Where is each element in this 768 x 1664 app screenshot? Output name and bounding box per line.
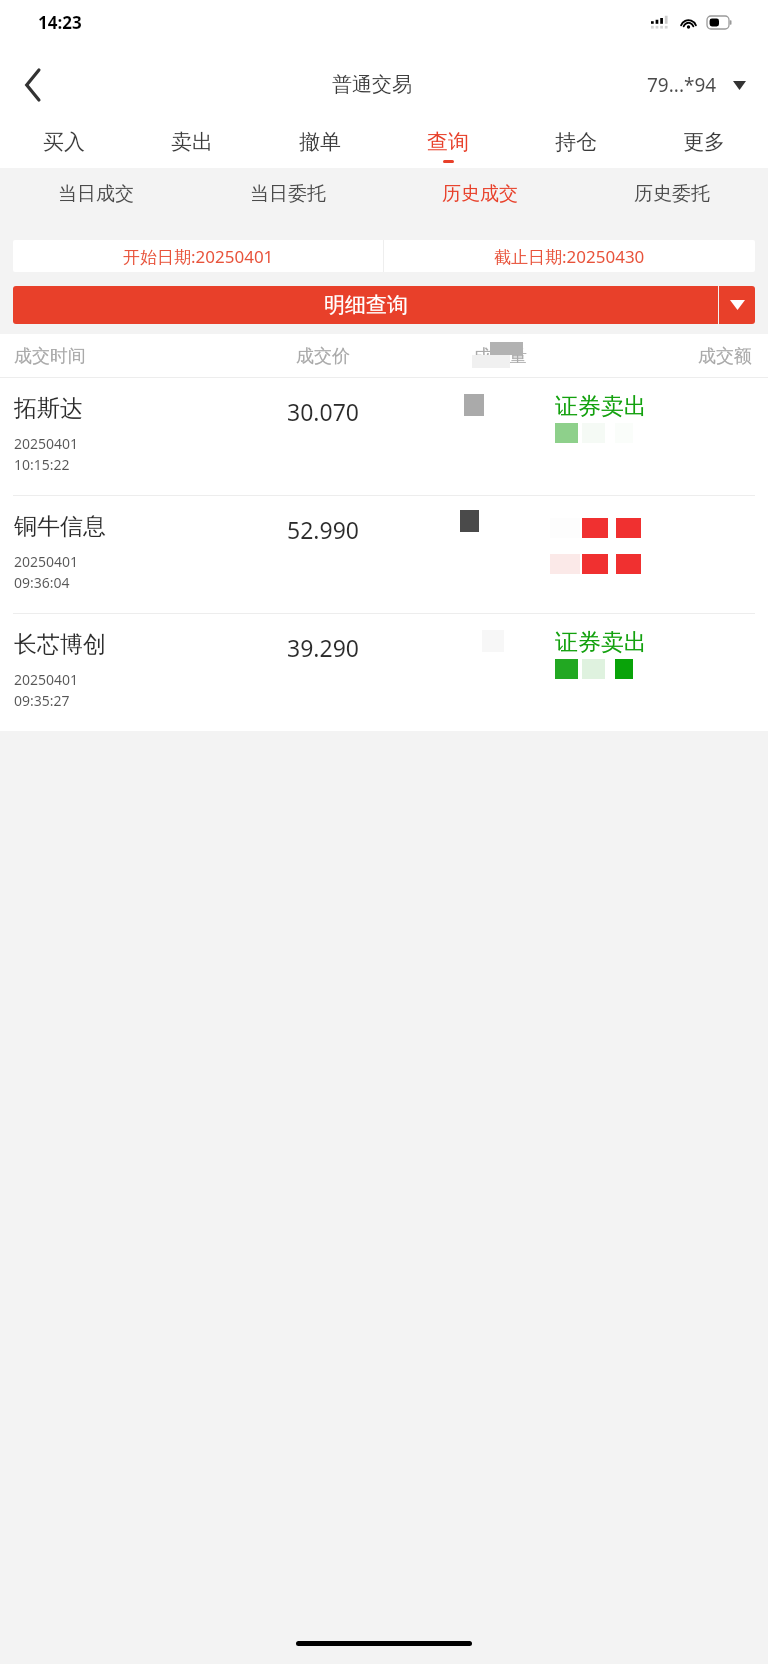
staticText: 买入	[43, 129, 85, 155]
button[interactable]: 当日成交	[0, 168, 192, 220]
staticText: 09:36:04	[14, 573, 70, 592]
staticText: 证券卖出	[555, 628, 647, 657]
button[interactable]: 明细查询	[13, 286, 718, 324]
staticText: 成交价	[296, 345, 350, 368]
staticText: 当日成交	[58, 182, 134, 206]
staticText: 成交量	[473, 345, 527, 368]
staticText: 持仓	[555, 129, 597, 155]
staticText: 长芯博创	[14, 630, 106, 659]
staticText: 铜牛信息	[14, 512, 106, 541]
button[interactable]: 开始日期:20250401	[13, 240, 383, 272]
staticText: 撤单	[299, 129, 341, 155]
button[interactable]: 铜牛信息	[0, 496, 768, 613]
staticText: 历史成交	[442, 182, 518, 206]
staticText: 更多	[683, 129, 725, 155]
staticText: 拓斯达	[14, 394, 83, 423]
staticText: 成交额	[698, 345, 752, 368]
button[interactable]: 截止日期:20250430	[384, 240, 755, 272]
staticText: 10:15:22	[14, 455, 70, 474]
button[interactable]: 79...*94	[647, 72, 746, 98]
staticText: 当日委托	[250, 182, 326, 206]
button[interactable]: 拓斯达	[0, 378, 768, 495]
button[interactable]: 买入	[0, 124, 128, 168]
staticText: 截止日期:20250430	[494, 245, 645, 268]
staticText: 39.290	[287, 632, 359, 663]
staticText: 普通交易	[332, 72, 412, 97]
staticText: 79...*94	[647, 72, 717, 98]
staticText: 30.070	[287, 396, 359, 427]
button[interactable]: More options	[719, 286, 755, 324]
button[interactable]: 查询	[384, 124, 512, 168]
button[interactable]: 撤单	[256, 124, 384, 168]
staticText: 卖出	[171, 129, 213, 155]
staticText: 开始日期:20250401	[123, 245, 274, 268]
button[interactable]: 卖出	[128, 124, 256, 168]
staticText: 20250401	[14, 670, 79, 689]
button[interactable]: 持仓	[512, 124, 640, 168]
staticText: 历史委托	[634, 182, 710, 206]
button[interactable]: 历史委托	[576, 168, 768, 220]
button[interactable]: 更多	[640, 124, 768, 168]
button[interactable]: Back	[0, 52, 66, 118]
staticText: 52.990	[287, 514, 359, 545]
staticText: 证券卖出	[555, 392, 647, 421]
staticText: 09:35:27	[14, 691, 70, 710]
staticText: 明细查询	[324, 292, 408, 318]
button[interactable]: 历史成交	[384, 168, 576, 220]
staticText: 20250401	[14, 434, 79, 453]
staticText: 成交时间	[14, 345, 86, 368]
button[interactable]: 当日委托	[192, 168, 384, 220]
staticText: 查询	[427, 129, 469, 155]
staticText: 20250401	[14, 552, 79, 571]
button[interactable]: 长芯博创	[0, 614, 768, 731]
staticText: 14:23	[38, 11, 82, 34]
